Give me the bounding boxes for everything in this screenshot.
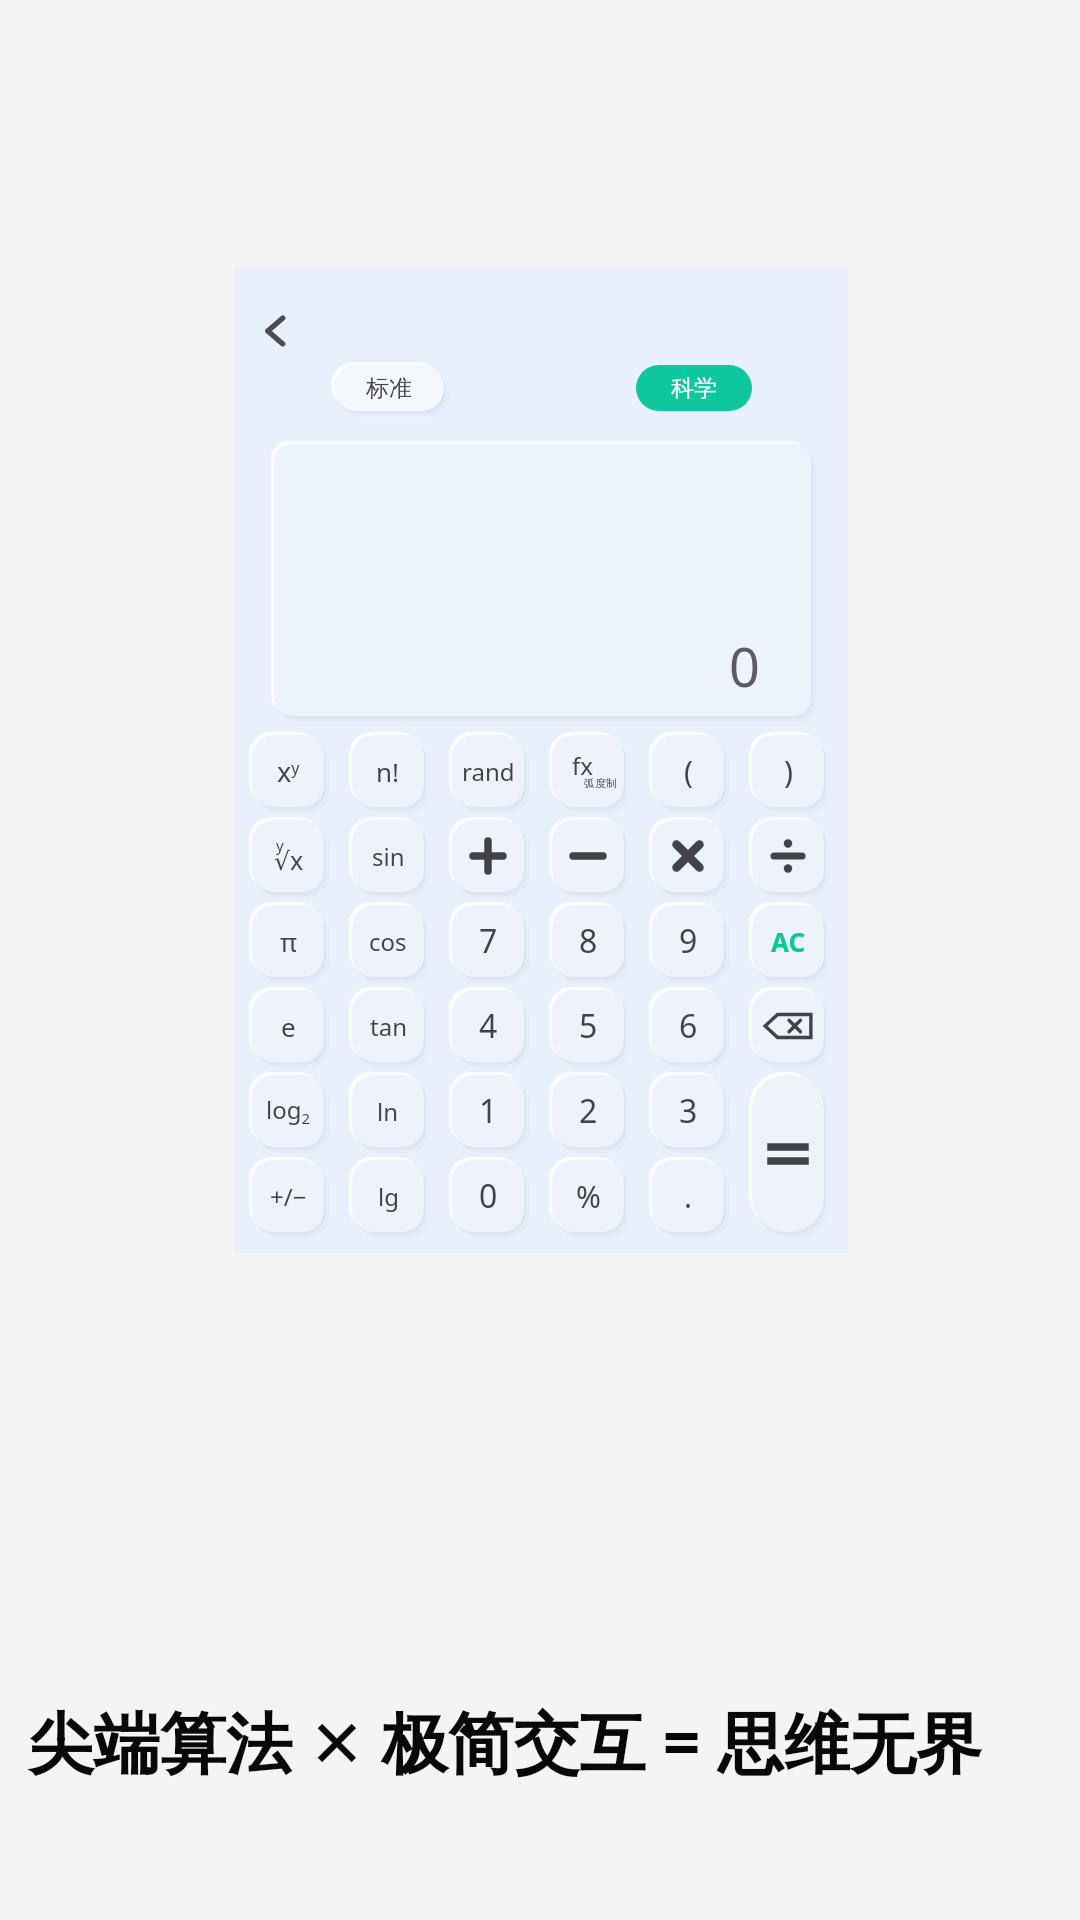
button[interactable]: 4 [452, 990, 524, 1062]
button[interactable]: Multiply [652, 820, 724, 892]
button[interactable]: n! [352, 735, 424, 807]
button[interactable]: xy [252, 735, 324, 807]
button[interactable]: Equals [752, 1075, 824, 1232]
staticText: 标准 [366, 374, 412, 403]
button[interactable]: 3 [652, 1075, 724, 1147]
staticText: e [281, 1009, 296, 1044]
button[interactable]: . [652, 1160, 724, 1232]
staticText: 6 [679, 1004, 698, 1048]
staticText: ( [684, 751, 693, 792]
staticText: 7 [479, 919, 498, 963]
staticText: 1 [479, 1089, 498, 1133]
button[interactable]: e [252, 990, 324, 1062]
staticText: tan [370, 1010, 407, 1043]
button[interactable]: 9 [652, 905, 724, 977]
staticText: 8 [579, 919, 598, 963]
staticText: 0 [479, 1174, 498, 1218]
button[interactable]: 1 [452, 1075, 524, 1147]
button[interactable]: 6 [652, 990, 724, 1062]
button[interactable]: log2 [252, 1075, 324, 1147]
staticText: 2 [579, 1089, 598, 1133]
button[interactable]: 科学 [636, 365, 752, 411]
button[interactable]: ln [352, 1075, 424, 1147]
button[interactable]: π [252, 905, 324, 977]
button[interactable]: +/− [252, 1160, 324, 1232]
staticText: 4 [479, 1004, 498, 1048]
staticText: sin [372, 840, 405, 873]
button[interactable]: fx [552, 735, 624, 807]
button[interactable]: AC [752, 905, 824, 977]
staticText: . [684, 1176, 693, 1217]
button[interactable]: sin [352, 820, 424, 892]
staticText: 尖端算法 ✕ 极简交互 = 思维无界 [28, 1696, 982, 1786]
staticText: 0 [729, 629, 760, 703]
staticText: 9 [679, 919, 698, 963]
staticText: lg [378, 1180, 399, 1213]
button[interactable]: cos [352, 905, 424, 977]
button[interactable]: 2 [552, 1075, 624, 1147]
button[interactable]: 0 [452, 1160, 524, 1232]
button[interactable]: 7 [452, 905, 524, 977]
staticText: rand [462, 755, 515, 788]
staticText: ) [784, 751, 793, 792]
staticText: π [280, 924, 297, 959]
staticText: n! [376, 754, 400, 789]
staticText: 3 [679, 1089, 698, 1133]
button[interactable]: ) [752, 735, 824, 807]
staticText: √x [274, 843, 304, 877]
button[interactable]: 5 [552, 990, 624, 1062]
staticText: % [576, 1176, 601, 1217]
button[interactable]: Backspace [752, 990, 824, 1062]
staticText: AC [771, 924, 806, 959]
staticText: ln [377, 1095, 399, 1128]
staticText: log2 [266, 1093, 311, 1129]
button[interactable]: Back [245, 300, 307, 362]
staticText: fx [572, 749, 593, 782]
button[interactable]: 8 [552, 905, 624, 977]
button[interactable]: Plus [452, 820, 524, 892]
staticText: 弧度制 [584, 776, 617, 790]
button[interactable]: Minus [552, 820, 624, 892]
button[interactable]: rand [452, 735, 524, 807]
button[interactable]: tan [352, 990, 424, 1062]
staticText: cos [369, 925, 407, 958]
button[interactable]: % [552, 1160, 624, 1232]
button[interactable]: lg [352, 1160, 424, 1232]
staticText: 科学 [671, 374, 717, 403]
staticText: xy [277, 753, 300, 790]
staticText: +/− [270, 1180, 307, 1213]
button[interactable]: y [252, 820, 324, 892]
button[interactable]: 标准 [334, 365, 444, 411]
button[interactable]: ( [652, 735, 724, 807]
staticText: y [276, 835, 284, 855]
staticText: 5 [579, 1004, 598, 1048]
button[interactable]: Divide [752, 820, 824, 892]
